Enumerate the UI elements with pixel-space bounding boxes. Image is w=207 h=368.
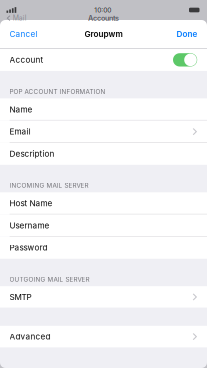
staticText: Password [10,243,48,252]
button[interactable]: Username [0,214,207,236]
button[interactable]: Email [0,121,207,143]
button[interactable]: Password [0,237,207,259]
button[interactable]: Advanced [0,326,207,347]
staticText: Account [10,55,44,65]
staticText: Groupwm [84,29,122,39]
button[interactable]: Done [176,24,197,44]
staticText: Email [10,127,31,136]
button[interactable]: Description [0,143,207,165]
staticText: Accounts [88,14,119,22]
staticText: POP ACCOUNT INFORMATION [10,88,106,95]
staticText: 10:00 [94,6,111,14]
staticText: Username [10,221,50,230]
staticText: SMTP [10,292,32,302]
button[interactable]: Host Name [0,192,207,214]
button[interactable]: SMTP [0,286,207,308]
staticText: Description [10,149,55,159]
button[interactable]: Account on [173,53,197,66]
staticText: OUTGOING MAIL SERVER [10,276,90,283]
staticText: Done [176,29,197,39]
staticText: Cancel [10,29,38,39]
staticText: Host Name [10,198,53,208]
button[interactable]: Account [0,49,207,71]
staticText: Name [10,105,33,114]
staticText: INCOMING MAIL SERVER [10,182,89,189]
button[interactable]: Name [0,98,207,120]
staticText: Mail [13,14,27,22]
button[interactable]: Cancel [10,24,38,44]
staticText: Advanced [10,332,51,341]
